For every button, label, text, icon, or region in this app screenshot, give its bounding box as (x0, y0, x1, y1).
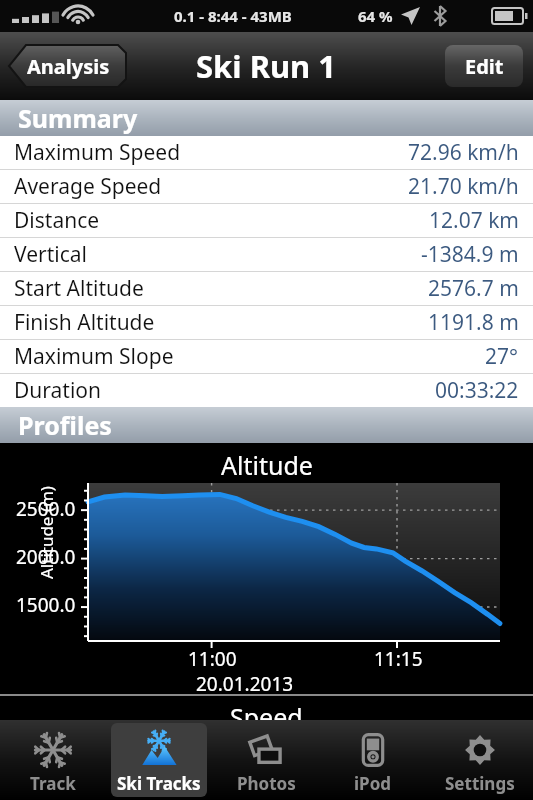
button[interactable]: Vertical (0, 238, 533, 271)
staticText: 21.70 km/h (408, 172, 519, 201)
button[interactable]: Start Altitude (0, 272, 533, 305)
button[interactable]: Photos (212, 720, 319, 800)
staticText: 11:00 (188, 646, 237, 672)
staticText: iPod (354, 772, 392, 795)
staticText: Altitude (m) (35, 486, 58, 579)
staticText: 11:15 (374, 646, 423, 672)
staticText: Analysis (27, 53, 110, 80)
staticText: -1384.9 m (421, 240, 519, 269)
staticText: Ski Run 1 (196, 45, 337, 87)
staticText: Vertical (14, 240, 87, 269)
button[interactable]: Duration (0, 374, 533, 407)
staticText: 1191.8 m (428, 308, 519, 337)
button[interactable]: Ski Tracks (106, 720, 212, 800)
staticText: Photos (237, 772, 296, 795)
button[interactable]: Distance (0, 204, 533, 237)
staticText: Duration (14, 376, 102, 405)
staticText: 27° (485, 342, 519, 371)
button[interactable]: Analysis (8, 43, 128, 89)
button[interactable]: Track (0, 720, 106, 800)
staticText: 20.01.2013 (196, 671, 294, 697)
staticText: Start Altitude (14, 274, 144, 303)
staticText: Distance (14, 206, 100, 235)
staticText: 00:33:22 (435, 376, 519, 405)
staticText: 12.07 km (429, 206, 519, 235)
staticText: 2576.7 m (428, 274, 519, 303)
staticText: Finish Altitude (14, 308, 155, 337)
button[interactable]: Finish Altitude (0, 306, 533, 339)
staticText: Edit (465, 53, 504, 80)
staticText: Average Speed (14, 172, 162, 201)
staticText: Summary (18, 101, 138, 135)
staticText: 64 % (358, 6, 393, 26)
staticText: Track (30, 772, 76, 795)
staticText: Altitude (221, 448, 313, 482)
staticText: 0.1 - 8:44 - 43MB (174, 6, 292, 26)
staticText: Ski Tracks (117, 772, 201, 795)
staticText: Settings (445, 772, 515, 795)
staticText: Profiles (18, 408, 112, 442)
button[interactable]: iPod (319, 720, 426, 800)
button[interactable]: Maximum Slope (0, 340, 533, 373)
staticText: 72.96 km/h (408, 138, 519, 167)
staticText: 2000.0 (16, 544, 76, 570)
button[interactable]: Edit (445, 45, 523, 87)
staticText: 2500.0 (16, 496, 76, 522)
staticText: Speed (230, 700, 303, 720)
staticText: Maximum Slope (14, 342, 174, 371)
button[interactable]: Average Speed (0, 170, 533, 203)
button[interactable]: Settings (426, 720, 533, 800)
button[interactable]: Maximum Speed (0, 136, 533, 169)
staticText: Maximum Speed (14, 138, 181, 167)
staticText: 1500.0 (16, 592, 76, 618)
